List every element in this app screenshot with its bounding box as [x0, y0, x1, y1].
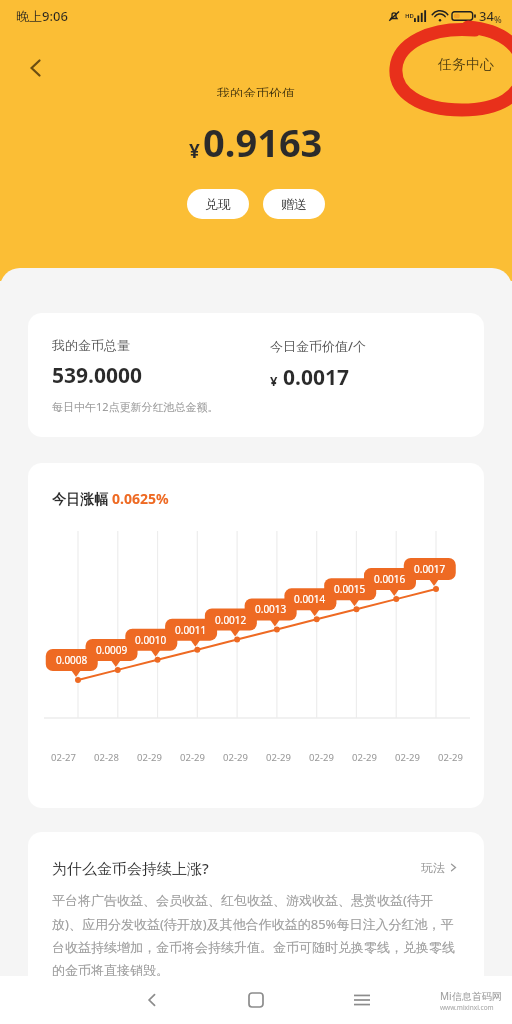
staticText: 0.0010 — [135, 633, 167, 647]
staticText: 02-27 — [42, 751, 85, 764]
staticText: ¥ — [270, 372, 278, 390]
staticText: 02-29 — [343, 751, 386, 764]
staticText: 0.0009 — [96, 643, 128, 657]
button[interactable]: 赠送 — [263, 189, 325, 219]
staticText: www.mixinxi.com — [440, 1003, 494, 1012]
staticText: 为什么金币会持续上涨? — [52, 858, 209, 878]
button[interactable]: Back — [14, 46, 58, 90]
staticText: ¥ — [189, 138, 200, 164]
staticText: 今日金币价值/个 — [270, 337, 367, 355]
staticText: 34 — [479, 7, 494, 25]
staticText: 0.0012 — [215, 613, 247, 627]
button[interactable]: 兑现 — [187, 189, 249, 219]
button[interactable]: 我的金币总量 — [28, 313, 484, 437]
staticText: 0.0011 — [175, 623, 207, 637]
staticText: 02-29 — [429, 751, 472, 764]
button[interactable]: 玩法 — [417, 856, 462, 879]
staticText: 02-29 — [214, 751, 257, 764]
staticText: 玩法 — [421, 860, 445, 875]
staticText: 539.0000 — [52, 361, 142, 390]
staticText: 0.0016 — [374, 572, 406, 586]
staticText: 赠送 — [281, 196, 307, 212]
staticText: 0.0008 — [56, 653, 88, 667]
staticText: 任务中心 — [438, 56, 494, 74]
staticText: 0.9163 — [203, 116, 323, 168]
staticText: 0.0625% — [112, 489, 169, 508]
staticText: 兑现 — [205, 196, 231, 212]
staticText: 02-29 — [171, 751, 214, 764]
staticText: HD — [405, 12, 414, 20]
staticText: 每日中午12点更新分红池总金额。 — [52, 399, 219, 414]
staticText: 02-29 — [386, 751, 429, 764]
staticText: 0.0015 — [334, 582, 366, 596]
button[interactable]: 任务中心 — [428, 50, 504, 80]
staticText: 0.0017 — [414, 562, 446, 576]
staticText: 0.0013 — [255, 602, 287, 616]
staticText: 0.0017 — [283, 363, 349, 392]
staticText: 02-29 — [257, 751, 300, 764]
staticText: 我的金币价值 — [217, 85, 295, 97]
staticText: 平台将广告收益、会员收益、红包收益、游戏收益、悬赏收益(待开放)、应用分发收益(… — [52, 891, 462, 979]
button[interactable]: Recent apps — [340, 976, 384, 1024]
staticText: 今日涨幅 — [52, 489, 112, 508]
staticText: % — [494, 13, 502, 25]
staticText: 0.0014 — [294, 592, 326, 606]
staticText: Mi信息首码网 — [440, 989, 502, 1003]
button[interactable]: Home — [234, 976, 278, 1024]
staticText: 02-29 — [128, 751, 171, 764]
staticText: 我的金币总量 — [52, 337, 130, 353]
button[interactable]: Back — [130, 976, 174, 1024]
staticText: 02-28 — [85, 751, 128, 764]
staticText: 晚上9:06 — [16, 7, 68, 25]
staticText: 02-29 — [300, 751, 343, 764]
